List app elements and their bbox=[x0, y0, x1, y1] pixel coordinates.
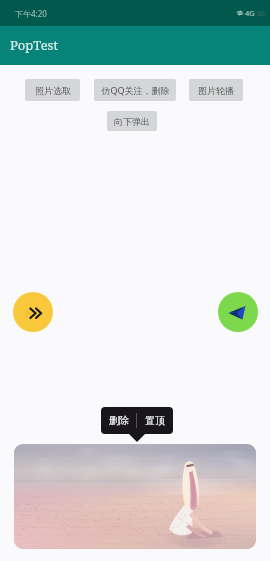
button[interactable]: Fast forward bbox=[13, 292, 53, 332]
button[interactable]: 向下弹出 bbox=[107, 111, 157, 131]
staticText: 置顶 bbox=[145, 414, 165, 427]
staticText: 仿QQ关注，删除 bbox=[101, 84, 170, 96]
staticText: 照片选取 bbox=[35, 85, 71, 96]
staticText: 图片轮播 bbox=[198, 85, 234, 96]
staticText: PopTest bbox=[10, 36, 59, 54]
button[interactable]: 图片轮播 bbox=[189, 79, 243, 101]
button[interactable]: 照片选取 bbox=[25, 79, 80, 101]
button[interactable]: 置顶 bbox=[137, 407, 173, 434]
button[interactable]: 删除 bbox=[101, 407, 136, 434]
button[interactable]: Navigate bbox=[218, 292, 258, 332]
staticText: 向下弹出 bbox=[114, 116, 150, 127]
button[interactable]: 仿QQ关注，删除 bbox=[94, 79, 176, 101]
staticText: 下午4:20 bbox=[15, 8, 47, 19]
button[interactable]: Beach photo bbox=[14, 444, 256, 549]
staticText: 4G bbox=[245, 8, 255, 18]
staticText: 删除 bbox=[109, 414, 129, 427]
